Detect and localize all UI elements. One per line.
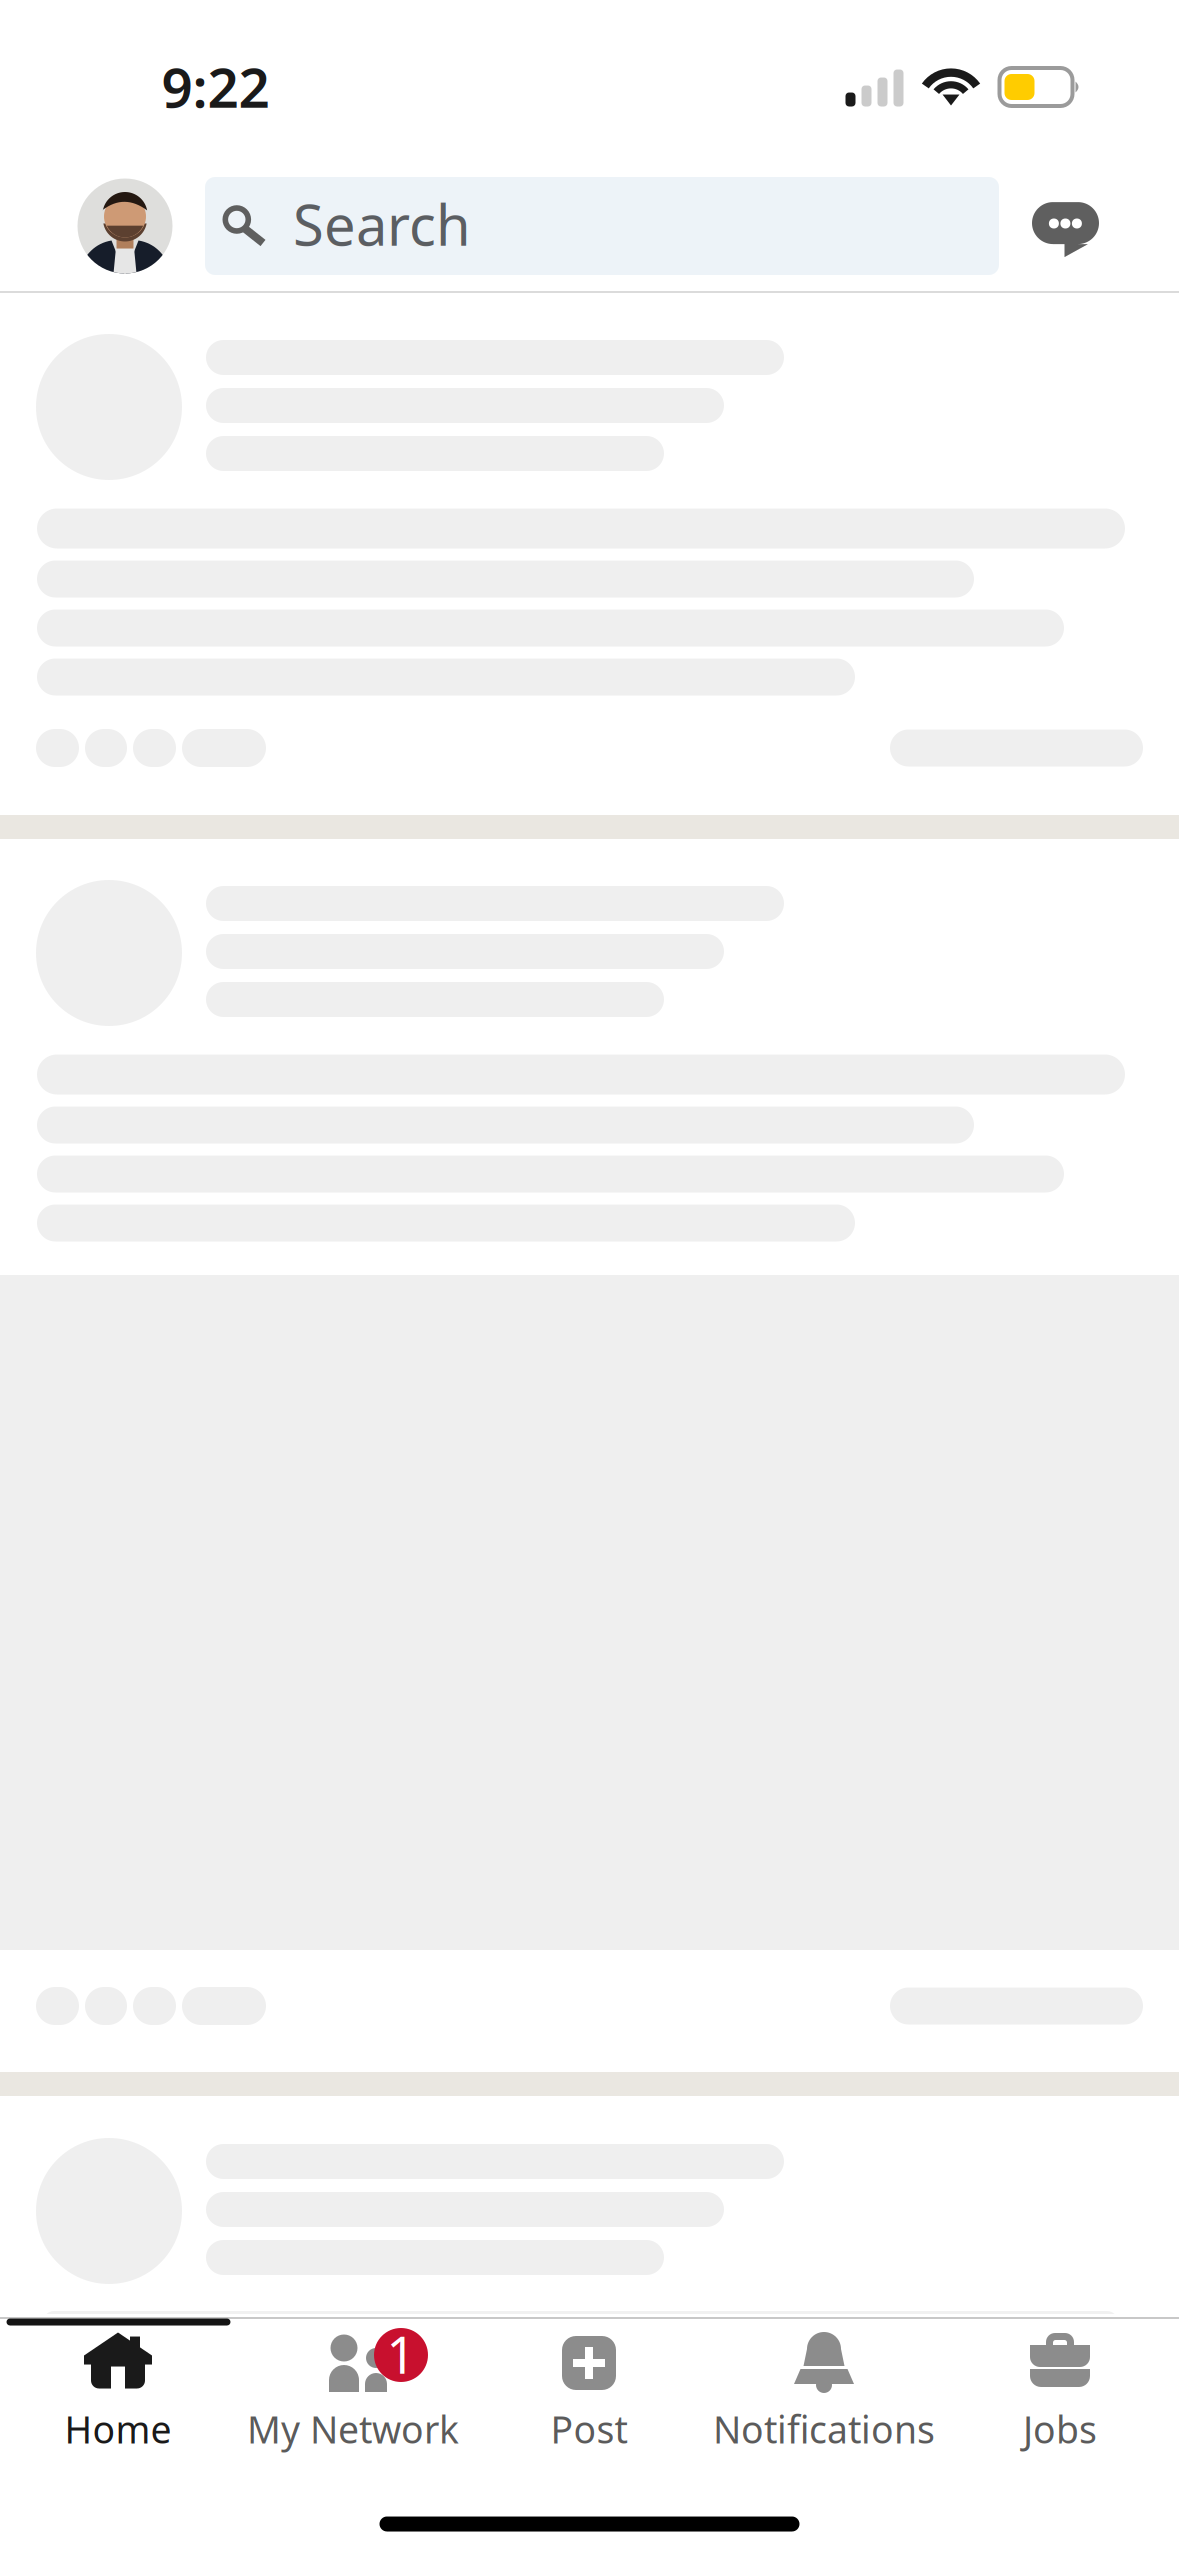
button[interactable]: Messaging xyxy=(1009,174,1121,286)
button[interactable]: My Network xyxy=(235,2314,471,2438)
staticText: Search xyxy=(293,187,471,261)
button[interactable]: Post xyxy=(471,2314,707,2438)
staticText: Jobs xyxy=(1023,2404,1097,2454)
staticText: Post xyxy=(550,2404,627,2454)
button[interactable]: Search xyxy=(205,177,999,275)
staticText: My Network xyxy=(247,2404,459,2454)
staticText: Notifications xyxy=(713,2404,935,2454)
button[interactable]: Jobs xyxy=(942,2314,1178,2438)
button[interactable]: Your profile xyxy=(62,163,187,288)
staticText: 1 xyxy=(386,2320,415,2388)
button[interactable]: Notifications xyxy=(706,2314,942,2438)
button[interactable]: Home xyxy=(0,2314,236,2438)
staticText: Home xyxy=(64,2404,171,2454)
staticText: 9:22 xyxy=(161,50,269,123)
